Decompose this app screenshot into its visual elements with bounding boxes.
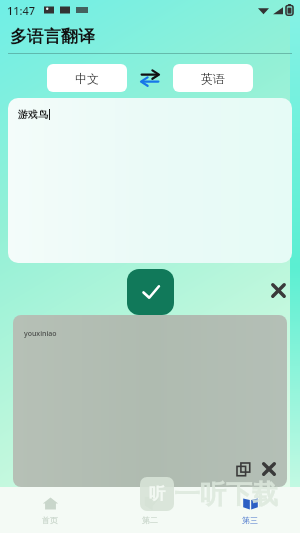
button[interactable]: Copy	[232, 458, 254, 480]
button[interactable]: 游戏鸟	[8, 98, 292, 263]
staticText: 游戏鸟	[18, 108, 48, 121]
staticText: 一听下载	[174, 478, 278, 511]
button[interactable]: 英语	[173, 64, 253, 92]
button[interactable]: Close	[257, 457, 281, 481]
button[interactable]: Swap languages	[137, 65, 163, 91]
button[interactable]: 第三	[200, 487, 300, 533]
staticText: 听	[149, 484, 165, 504]
staticText: 中文	[75, 71, 99, 86]
button[interactable]: 首页	[0, 487, 100, 533]
button[interactable]: 第二	[100, 487, 200, 533]
button[interactable]: Clear	[265, 277, 291, 303]
button[interactable]: Translate	[127, 269, 174, 315]
staticText: youxiniao	[24, 329, 57, 339]
staticText: 第二	[142, 515, 158, 525]
staticText: 多语言翻译	[10, 26, 95, 47]
staticText: 英语	[201, 71, 225, 86]
button[interactable]: youxiniao	[13, 315, 287, 487]
staticText: 11:47	[7, 3, 36, 18]
staticText: 首页	[42, 515, 58, 525]
button[interactable]: 中文	[47, 64, 127, 92]
staticText: 第三	[242, 515, 258, 525]
